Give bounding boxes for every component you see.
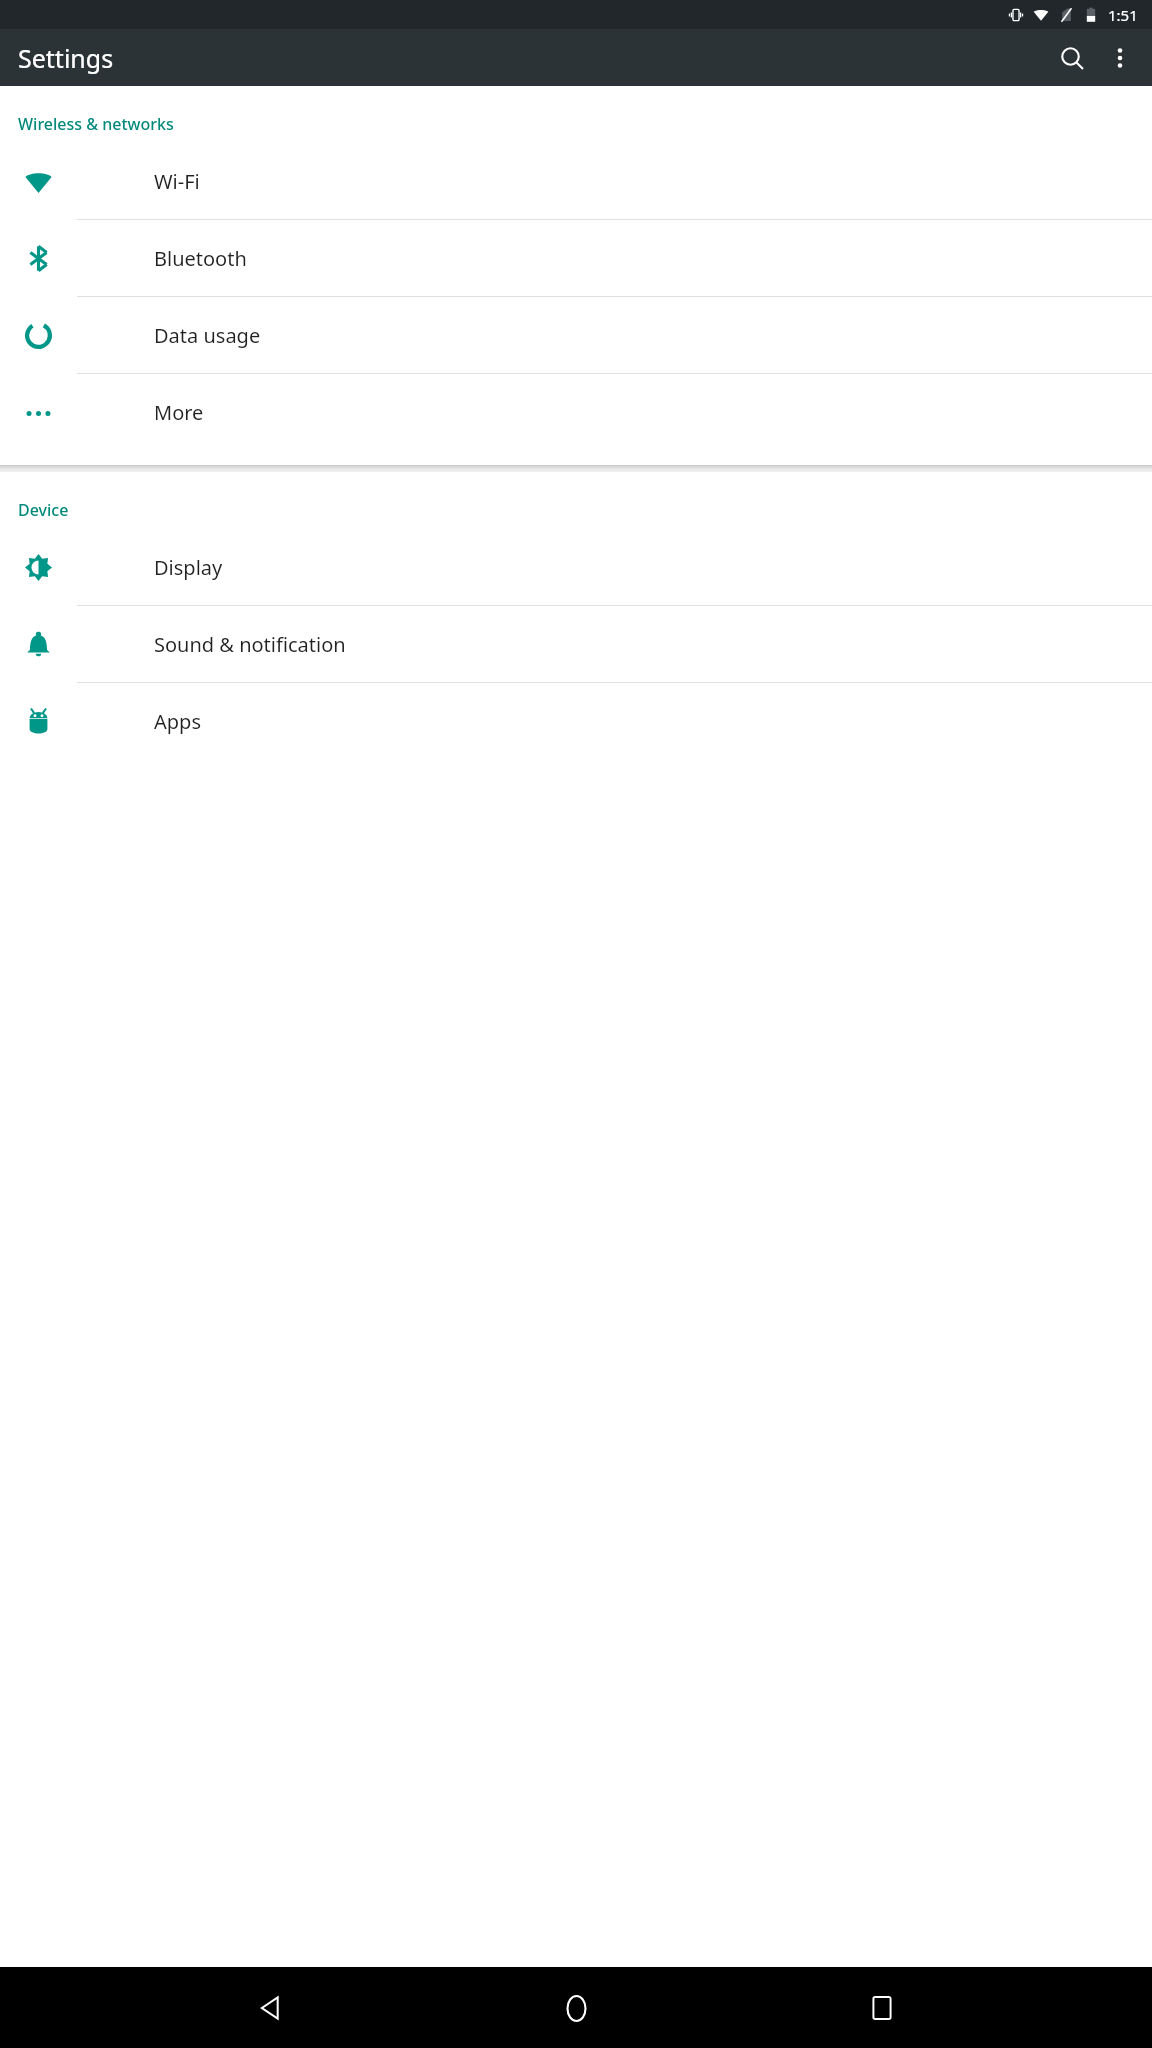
staticText: Bluetooth <box>154 245 247 272</box>
staticText: Sound & notification <box>154 631 346 658</box>
staticText: Display <box>154 554 223 581</box>
staticText: Wi-Fi <box>154 168 200 195</box>
button[interactable]: Display <box>0 529 1152 606</box>
button[interactable]: Apps <box>0 683 1152 760</box>
staticText: Data usage <box>154 322 261 349</box>
staticText: More <box>154 399 204 426</box>
button[interactable]: Home <box>540 1972 612 2044</box>
button[interactable]: Data usage <box>0 297 1152 374</box>
button[interactable]: Recent apps <box>846 1972 918 2044</box>
button[interactable]: Bluetooth <box>0 220 1152 297</box>
button[interactable]: Sound & notification <box>0 606 1152 683</box>
staticText: Settings <box>18 41 114 75</box>
button[interactable]: Back <box>234 1972 306 2044</box>
button[interactable]: Wi-Fi <box>0 143 1152 220</box>
staticText: 1:51 <box>1108 5 1138 25</box>
button[interactable]: Search <box>1048 34 1096 82</box>
button[interactable]: More options <box>1096 34 1144 82</box>
button[interactable]: More <box>0 374 1152 451</box>
staticText: Wireless & networks <box>18 113 174 135</box>
staticText: Device <box>18 499 69 521</box>
staticText: Apps <box>154 708 201 735</box>
